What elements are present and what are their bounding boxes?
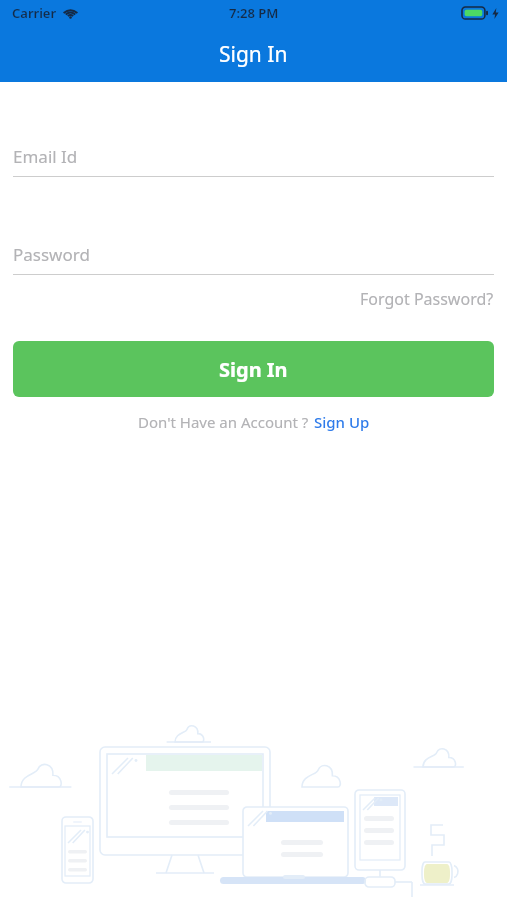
staticText: Password	[13, 243, 90, 266]
staticText: Sign In	[219, 356, 288, 383]
staticText: Email Id	[13, 145, 78, 168]
button[interactable]: Forgot Password?	[347, 283, 507, 315]
staticText: Don't Have an Account ?	[138, 412, 309, 432]
button[interactable]: Sign In	[13, 341, 494, 397]
staticText: Forgot Password?	[360, 288, 494, 310]
staticText: Carrier	[12, 4, 57, 22]
button[interactable]: Sign Up	[314, 412, 370, 432]
other: Devices illustration	[0, 725, 507, 900]
staticText: Sign Up	[314, 412, 370, 432]
button[interactable]: Password	[13, 234, 494, 274]
staticText: Sign In	[219, 40, 288, 69]
staticText: 7:28 PM	[229, 4, 279, 22]
button[interactable]: Email Id	[13, 136, 494, 176]
